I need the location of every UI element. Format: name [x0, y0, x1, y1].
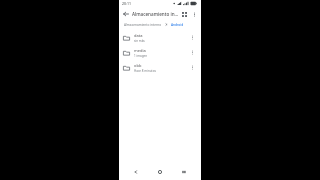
button[interactable]: Item options: [188, 63, 197, 72]
staticText: Almacenamiento interno: [124, 23, 162, 27]
button[interactable]: Item options: [188, 33, 197, 42]
button[interactable]: Back: [129, 165, 143, 179]
staticText: media: [134, 48, 146, 53]
button[interactable]: Recent apps: [177, 165, 191, 179]
button[interactable]: More options: [189, 9, 199, 19]
staticText: sin más: [134, 39, 145, 43]
button[interactable]: Back: [121, 9, 131, 19]
staticText: Hace 8 minutos: [134, 69, 156, 73]
button[interactable]: media: [119, 45, 201, 60]
staticText: Android: [171, 23, 184, 27]
staticText: Almacenamiento in…: [132, 11, 179, 17]
button[interactable]: obb: [119, 60, 201, 75]
button[interactable]: data: [119, 30, 201, 45]
button[interactable]: Home: [153, 165, 167, 179]
button[interactable]: Item options: [188, 48, 197, 57]
button[interactable]: Android: [170, 23, 185, 27]
staticText: 20:11: [122, 1, 131, 6]
staticText: data: [134, 33, 143, 38]
button[interactable]: Grid view: [179, 9, 189, 19]
button[interactable]: Almacenamiento interno: [123, 23, 163, 27]
staticText: 1 imagen: [134, 54, 148, 58]
staticText: obb: [134, 63, 142, 68]
